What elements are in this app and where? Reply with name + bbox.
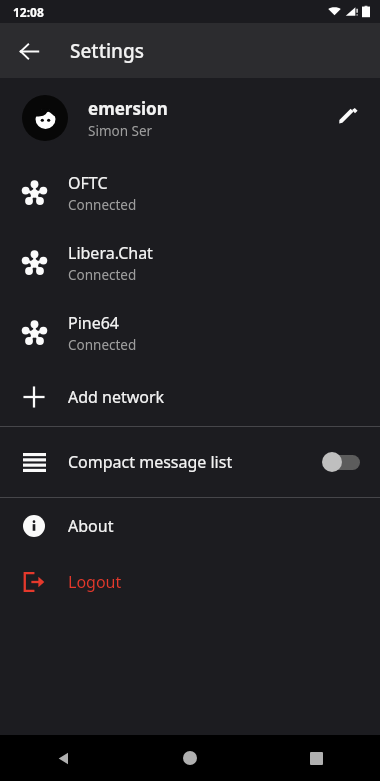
staticText: Pine64: [68, 312, 120, 334]
staticText: OFTC: [68, 172, 108, 194]
staticText: Libera.Chat: [68, 242, 153, 264]
button[interactable]: Back: [0, 735, 126, 781]
button[interactable]: Pine64: [0, 298, 380, 368]
staticText: Compact message list: [68, 451, 322, 473]
staticText: emersion: [88, 97, 168, 120]
button[interactable]: Logout: [0, 554, 380, 610]
button[interactable]: Compact message list: [0, 427, 380, 497]
button[interactable]: Home: [126, 735, 253, 781]
staticText: Connected: [68, 196, 137, 214]
staticText: 12:08: [13, 4, 44, 20]
button[interactable]: Recent apps: [253, 735, 380, 781]
button[interactable]: OFTC: [0, 158, 380, 228]
button[interactable]: Edit profile: [328, 98, 368, 138]
button[interactable]: emersion: [0, 78, 380, 158]
staticText: Settings: [70, 38, 144, 64]
staticText: Connected: [68, 336, 137, 354]
staticText: Logout: [68, 571, 122, 593]
staticText: Connected: [68, 266, 137, 284]
button[interactable]: About: [0, 498, 380, 554]
staticText: Add network: [68, 386, 165, 408]
button[interactable]: Back: [8, 30, 50, 72]
staticText: About: [68, 515, 114, 537]
button[interactable]: Libera.Chat: [0, 228, 380, 298]
button[interactable]: Add network: [0, 368, 380, 426]
staticText: Simon Ser: [88, 122, 153, 140]
